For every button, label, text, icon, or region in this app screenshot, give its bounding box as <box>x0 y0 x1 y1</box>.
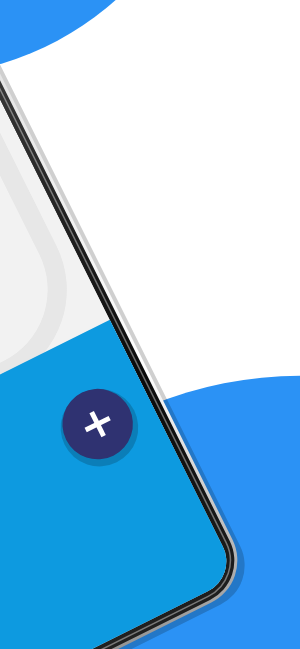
button[interactable]: Secure your documents onboarding <box>0 0 300 649</box>
